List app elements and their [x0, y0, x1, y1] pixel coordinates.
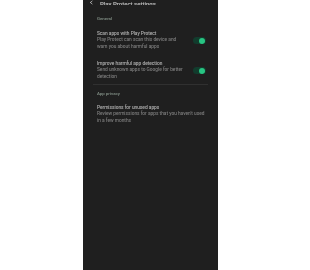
- staticText: Improve harmful app detection: [97, 61, 163, 67]
- staticText: General: [97, 16, 113, 21]
- staticText: Permissions for unused apps: [97, 105, 160, 111]
- button[interactable]: Permissions for unused apps: [83, 105, 218, 123]
- staticText: Scan apps with Play Protect: [97, 31, 157, 37]
- staticText: Review permissions for apps that you hav…: [97, 111, 205, 123]
- button[interactable]: Improve harmful app detection: [83, 61, 218, 79]
- staticText: Play Protect can scan this device and wa…: [97, 37, 185, 49]
- button[interactable]: Toggle Improve harmful app detection: [193, 67, 206, 74]
- staticText: Send unknown apps to Google for better d…: [97, 67, 185, 79]
- button[interactable]: Toggle Scan apps with Play Protect: [193, 37, 206, 44]
- staticText: App privacy: [97, 91, 120, 96]
- staticText: Play Protect settings: [100, 0, 156, 5]
- button[interactable]: Back: [87, 0, 96, 5]
- button[interactable]: Scan apps with Play Protect: [83, 31, 218, 49]
